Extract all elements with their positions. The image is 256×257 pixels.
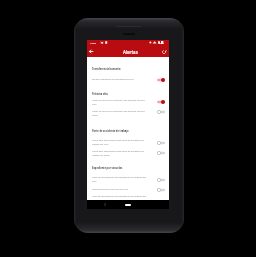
staticText: Aviso de presentación de expediente de s… bbox=[92, 195, 149, 202]
staticText: 81% bbox=[159, 41, 164, 44]
button[interactable]: Aviso de presentación de expediente de s… bbox=[92, 194, 149, 203]
button[interactable]: Desactivado bbox=[156, 109, 166, 115]
staticText: Próxima alta bbox=[92, 92, 108, 95]
staticText: Fecha Resolución del INSS por SMS bbox=[92, 188, 128, 191]
button[interactable]: Aviso de presentación de expediente de s… bbox=[92, 175, 149, 184]
button[interactable]: Activado bbox=[156, 77, 166, 83]
staticText: Aviso de presentación de expediente de s… bbox=[92, 176, 149, 183]
button[interactable]: Desactivado bbox=[156, 140, 166, 146]
button[interactable]: Alerta para presentación del parte de ac… bbox=[92, 149, 149, 158]
staticText: Expediente por secuelas bbox=[92, 166, 123, 169]
staticText: Transferencia bancaria bbox=[92, 67, 121, 70]
staticText: Parte de accidente de trabajo bbox=[92, 129, 129, 132]
button[interactable]: Alerta para presentación del parte de ac… bbox=[92, 138, 149, 147]
button[interactable]: Recibir notificación de transferencia SM… bbox=[92, 77, 149, 82]
button[interactable]: Desactivado bbox=[156, 150, 166, 156]
staticText: Alerta para presentación del parte de ac… bbox=[92, 150, 149, 157]
staticText: Alertas bbox=[123, 49, 138, 55]
staticText: 14:07 bbox=[90, 41, 97, 44]
button[interactable]: Fecha Resolución del INSS por SMS bbox=[92, 187, 149, 192]
staticText: Avisar de que se va a producir una próxi… bbox=[92, 110, 149, 117]
button[interactable]: Desactivado bbox=[156, 187, 166, 193]
button[interactable]: Atrás bbox=[87, 48, 94, 55]
button[interactable]: Desactivado bbox=[156, 177, 166, 183]
staticText: Recibir notificación de transferencia SM… bbox=[92, 78, 134, 81]
staticText: Avisar de que se va a producir una próxi… bbox=[92, 99, 149, 106]
button[interactable]: Back bbox=[103, 202, 107, 206]
button[interactable]: Activado bbox=[156, 99, 166, 105]
button[interactable]: Actualizar bbox=[160, 48, 167, 55]
staticText: Alerta para presentación del parte de ac… bbox=[92, 139, 149, 146]
button[interactable]: Avisar de que se va a producir una próxi… bbox=[92, 109, 149, 118]
button[interactable]: Avisar de que se va a producir una próxi… bbox=[92, 98, 149, 107]
